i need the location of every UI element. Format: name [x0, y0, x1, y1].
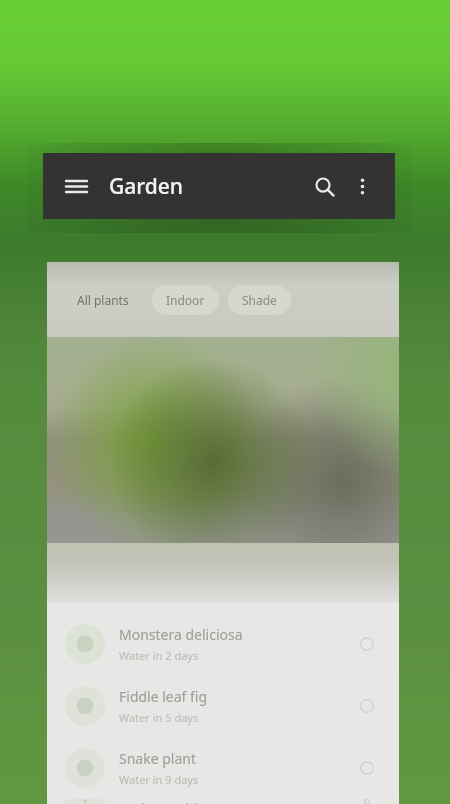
staticText: Fiddle leaf fig: [119, 687, 208, 706]
button[interactable]: Navigation menu: [43, 153, 395, 219]
button[interactable]: [47, 337, 399, 543]
button[interactable]: Shade: [228, 285, 291, 315]
staticText: Pothos golden: [119, 799, 215, 804]
staticText: Water in 9 days: [119, 772, 199, 787]
button[interactable]: Snake plant: [65, 737, 381, 799]
staticText: Indoor: [166, 292, 205, 308]
button[interactable]: Navigation menu: [57, 167, 95, 205]
button[interactable]: Water plant: [353, 754, 381, 782]
button[interactable]: More options: [343, 167, 381, 205]
staticText: All plants: [77, 292, 129, 308]
staticText: Water in 5 days: [119, 710, 199, 725]
button[interactable]: Fiddle leaf fig: [65, 675, 381, 737]
staticText: Water in 2 days: [119, 648, 199, 663]
staticText: Monstera deliciosa: [119, 625, 243, 644]
button[interactable]: Indoor: [152, 285, 219, 315]
button[interactable]: Monstera deliciosa: [65, 613, 381, 675]
button[interactable]: Pothos golden: [65, 799, 381, 804]
button[interactable]: Water plant: [353, 692, 381, 720]
button[interactable]: Water plant: [353, 630, 381, 658]
staticText: Snake plant: [119, 749, 196, 768]
button[interactable]: All plants: [63, 285, 143, 315]
button[interactable]: Water plant: [353, 799, 381, 804]
staticText: Shade: [242, 292, 277, 308]
staticText: Garden: [109, 172, 183, 201]
button[interactable]: Search: [305, 167, 343, 205]
